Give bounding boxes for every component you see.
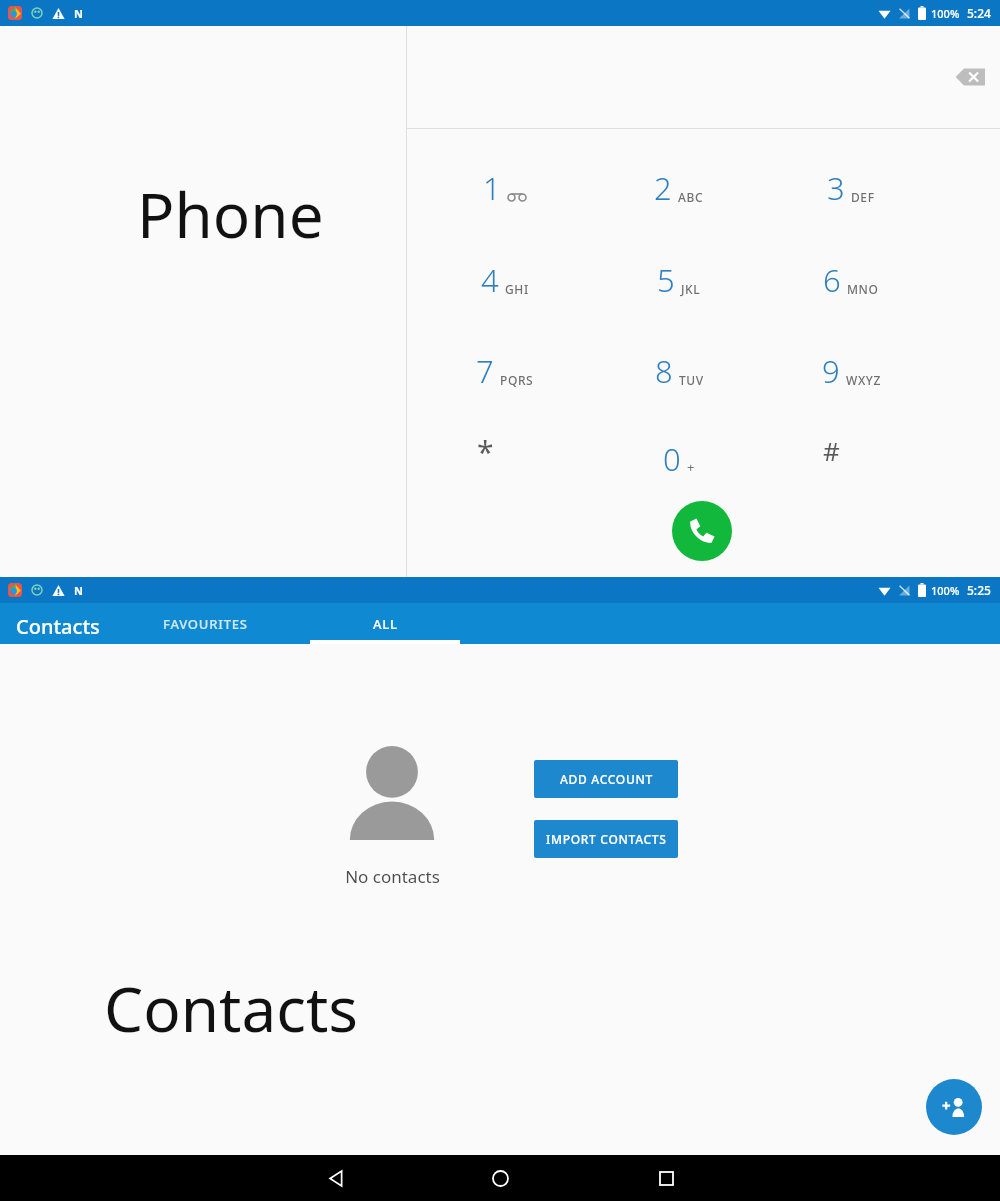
button[interactable]: Home	[472, 1155, 528, 1201]
staticText: 9	[822, 350, 840, 392]
staticText: 5:24	[967, 5, 991, 21]
button[interactable]: 9	[776, 331, 926, 411]
button[interactable]: #	[776, 410, 926, 490]
staticText: PQRS	[500, 372, 534, 388]
button[interactable]: ADD ACCOUNT	[534, 760, 678, 798]
button[interactable]: Back	[307, 1155, 363, 1201]
staticText: 5	[657, 259, 675, 301]
staticText: FAVOURITES	[163, 615, 248, 633]
button[interactable]: Backspace	[942, 49, 998, 105]
button[interactable]: 7	[430, 331, 580, 411]
button[interactable]: 2	[604, 148, 754, 228]
staticText: 8	[655, 350, 673, 392]
staticText: 2	[654, 167, 672, 209]
staticText: JKL	[681, 281, 701, 297]
button[interactable]: 3	[776, 148, 926, 228]
button[interactable]: IMPORT CONTACTS	[534, 820, 678, 858]
staticText: IMPORT CONTACTS	[546, 831, 667, 847]
staticText: 7	[476, 350, 494, 392]
staticText: WXYZ	[846, 372, 881, 388]
staticText: 0	[663, 438, 681, 480]
staticText: Phone	[137, 172, 324, 256]
staticText: 6	[823, 259, 841, 301]
button[interactable]: Call	[672, 501, 732, 561]
button[interactable]: 0	[604, 419, 754, 499]
staticText: +	[687, 458, 695, 476]
staticText: 5:25	[967, 582, 991, 598]
staticText: 1	[483, 167, 501, 209]
button[interactable]: 8	[604, 331, 754, 411]
staticText: No contacts	[345, 865, 440, 888]
staticText: N	[74, 583, 83, 598]
button[interactable]: *	[430, 411, 580, 491]
button[interactable]: Add contact	[926, 1079, 982, 1135]
staticText: MNO	[847, 281, 879, 297]
button[interactable]: 4	[430, 240, 580, 320]
staticText: 100%	[931, 6, 960, 21]
button[interactable]: 5	[604, 240, 754, 320]
staticText: DEF	[851, 189, 875, 205]
staticText: GHI	[505, 281, 529, 297]
staticText: 100%	[931, 583, 960, 598]
staticText: #	[823, 433, 840, 468]
staticText: 4	[481, 259, 499, 301]
staticText: *	[477, 431, 494, 472]
staticText: Contacts	[16, 613, 100, 640]
button[interactable]: 1	[430, 148, 580, 228]
button[interactable]: 6	[776, 240, 926, 320]
button[interactable]: Recent apps	[638, 1155, 694, 1201]
button[interactable]: Contacts	[16, 613, 100, 640]
staticText: 3	[827, 167, 845, 209]
button[interactable]: FAVOURITES	[130, 603, 280, 644]
staticText: Contacts	[104, 966, 359, 1050]
staticText: N	[74, 6, 83, 21]
staticText: ADD ACCOUNT	[560, 771, 653, 787]
staticText: ALL	[373, 615, 398, 633]
staticText: ABC	[678, 189, 704, 205]
staticText: TUV	[679, 372, 704, 388]
button[interactable]: ALL	[310, 603, 460, 644]
